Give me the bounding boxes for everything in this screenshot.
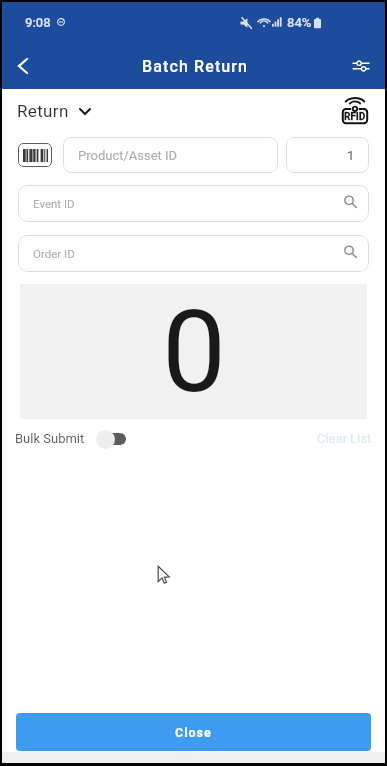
staticText: Event ID [33, 197, 75, 210]
staticText: Batch Return [142, 57, 249, 76]
button[interactable]: 1 [286, 137, 369, 173]
button[interactable]: Product/Asset ID [63, 137, 278, 173]
button[interactable]: Back [6, 49, 40, 83]
staticText: RFID [344, 111, 366, 123]
button[interactable]: Event ID [18, 185, 369, 222]
staticText: Order ID [33, 247, 75, 260]
staticText: 9:08 [25, 15, 51, 30]
button[interactable]: Bulk Submit toggle [96, 429, 127, 449]
button[interactable]: Order ID [18, 235, 369, 272]
button[interactable]: RFID scan [340, 96, 370, 126]
button[interactable]: Return [17, 101, 91, 121]
staticText: Bulk Submit [15, 431, 85, 446]
staticText: Close [175, 725, 212, 740]
button[interactable]: Scan barcode [18, 143, 52, 167]
staticText: 1 [347, 148, 355, 163]
button[interactable]: Close [16, 713, 371, 751]
button[interactable]: Clear List [317, 431, 372, 446]
staticText: Clear List [317, 431, 372, 446]
staticText: Product/Asset ID [78, 148, 178, 163]
staticText: 0 [162, 285, 227, 419]
staticText: Return [17, 101, 69, 121]
button[interactable]: Filter settings [344, 49, 378, 83]
staticText: 84% [287, 15, 312, 30]
